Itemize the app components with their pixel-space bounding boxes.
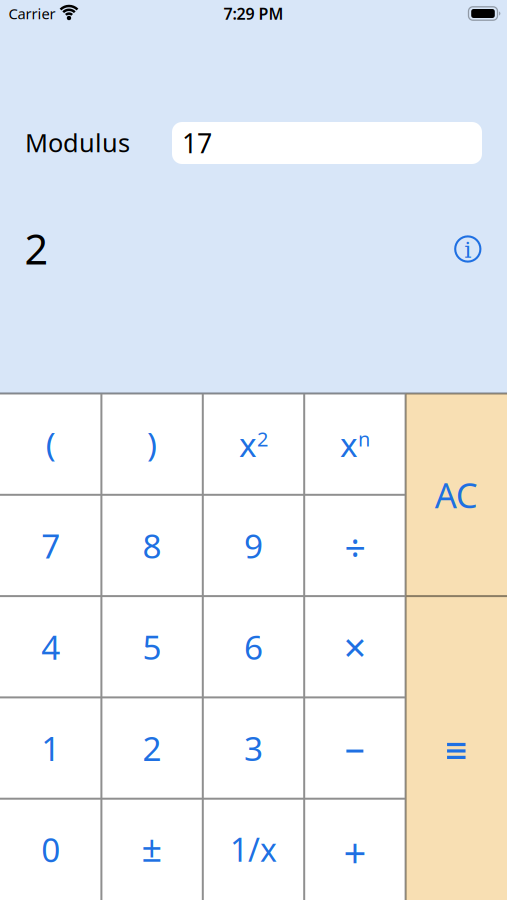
staticText: x2 (239, 422, 268, 466)
button[interactable]: 8 (103, 496, 201, 595)
button[interactable]: 7 (1, 496, 100, 595)
button[interactable]: 6 (204, 598, 303, 696)
button[interactable]: ( (1, 395, 100, 493)
staticText: 0 (41, 827, 60, 871)
button[interactable]: Evaluate modulo (407, 601, 505, 900)
button[interactable]: 3 (204, 699, 303, 797)
button[interactable]: 1/x (204, 800, 303, 898)
staticText: ) (147, 422, 157, 466)
button[interactable]: ÷ (306, 498, 404, 597)
button[interactable]: ± (103, 799, 201, 897)
staticText: Carrier (8, 4, 55, 23)
staticText: 6 (244, 625, 263, 669)
staticText: 9 (244, 523, 263, 568)
button[interactable]: ) (103, 395, 201, 493)
button[interactable]: 9 (204, 496, 303, 595)
staticText: ÷ (344, 523, 365, 572)
staticText: × (343, 620, 366, 673)
staticText: xn (340, 422, 370, 466)
staticText: 2 (143, 726, 162, 770)
button[interactable]: xn (306, 395, 404, 493)
button[interactable]: 1 (1, 699, 100, 797)
button[interactable]: × (306, 598, 404, 696)
button[interactable]: 4 (1, 598, 100, 696)
staticText: 1 (41, 726, 60, 770)
button[interactable]: x2 (204, 395, 303, 493)
staticText: 4 (41, 625, 60, 669)
staticText: ± (142, 824, 163, 872)
staticText: Modulus (25, 126, 130, 159)
button[interactable]: 0 (1, 800, 100, 898)
button[interactable]: 5 (103, 598, 201, 696)
staticText: 7 (41, 523, 60, 568)
staticText: 8 (143, 523, 162, 568)
staticText: i (464, 237, 471, 263)
staticText: 17 (182, 125, 212, 161)
button[interactable]: + (306, 803, 404, 900)
button[interactable]: AC (407, 395, 505, 595)
button[interactable]: Info (454, 235, 482, 263)
staticText: 2 (24, 221, 48, 276)
button[interactable]: 2 (103, 699, 201, 797)
staticText: + (343, 825, 366, 878)
button[interactable]: Subtract (306, 702, 404, 800)
staticText: AC (435, 472, 478, 518)
staticText: 3 (244, 726, 263, 770)
button[interactable]: Modulus value (172, 122, 482, 164)
staticText: ( (46, 422, 56, 466)
staticText: 5 (143, 625, 162, 669)
staticText: 7:29 PM (223, 3, 283, 24)
staticText: 1/x (230, 828, 277, 871)
